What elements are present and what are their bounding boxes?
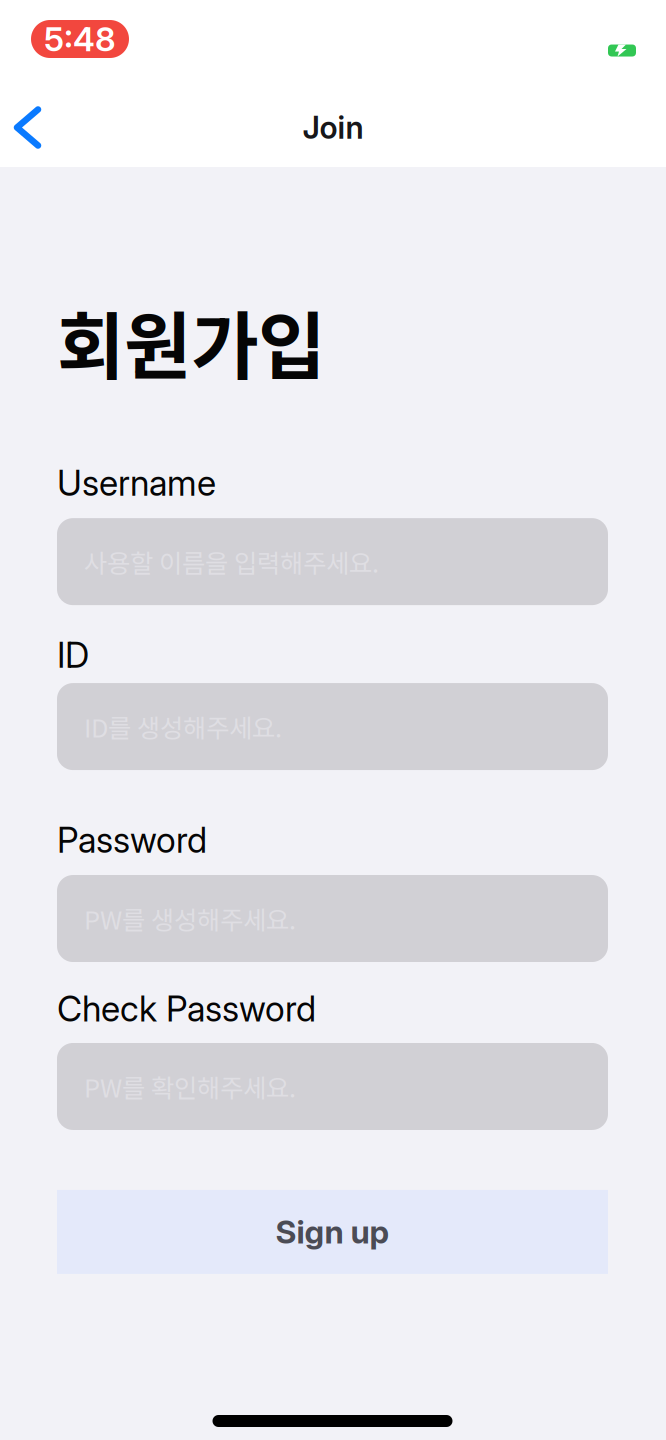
staticText: 회원가입	[57, 288, 325, 394]
staticText: 5:48	[44, 19, 116, 59]
staticText: Sign up	[275, 1213, 389, 1251]
staticText: Username	[57, 462, 216, 504]
staticText: ID	[57, 634, 89, 676]
staticText: Check Password	[57, 988, 316, 1030]
staticText: PW를 생성해주세요.	[84, 900, 296, 937]
staticText: PW를 확인해주세요.	[84, 1068, 296, 1105]
staticText: Password	[57, 819, 207, 861]
button[interactable]: 5:48	[31, 20, 129, 58]
button[interactable]	[14, 109, 41, 145]
button[interactable]: Sign up	[57, 1190, 608, 1274]
staticText: ID를 생성해주세요.	[84, 708, 282, 745]
staticText: 사용할 이름을 입력해주세요.	[84, 543, 379, 580]
staticText: Join	[302, 109, 363, 146]
button[interactable]: 사용할 이름을 입력해주세요.	[57, 518, 608, 605]
button[interactable]: PW를 확인해주세요.	[57, 1043, 608, 1130]
